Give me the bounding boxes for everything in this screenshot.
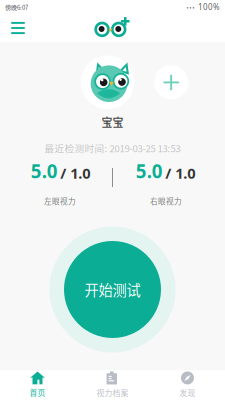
staticText: 100% <box>198 2 220 12</box>
button[interactable]: 开始测试 <box>49 226 175 352</box>
button[interactable]: 宝宝 <box>81 56 134 109</box>
staticText: 视力档案 <box>96 387 128 398</box>
staticText: 5.0 <box>136 159 163 183</box>
button[interactable]: 视力档案 <box>75 370 150 400</box>
staticText: 发现 <box>179 387 195 398</box>
button[interactable]: 首页 <box>0 370 75 400</box>
staticText: 宝宝 <box>101 114 123 130</box>
button[interactable]: Menu <box>0 14 36 42</box>
staticText: ··· <box>186 0 195 14</box>
button[interactable]: Add profile <box>154 65 188 99</box>
staticText: 开始测试 <box>84 279 140 300</box>
button[interactable]: 发现 <box>150 370 225 400</box>
staticText: 5.0 <box>31 159 58 183</box>
staticText: / 1.0 <box>60 163 90 183</box>
staticText: 左眼视力 <box>44 195 76 206</box>
staticText: 右眼视力 <box>150 195 182 206</box>
staticText: / 1.0 <box>165 163 195 183</box>
staticText: 首页 <box>29 387 45 398</box>
staticText: 最近检测时间: 2019-03-25 13:53 <box>44 141 180 155</box>
staticText: 傍晚6:07 <box>5 3 28 11</box>
